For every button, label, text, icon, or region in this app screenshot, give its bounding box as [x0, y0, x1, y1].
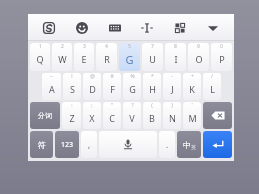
button[interactable]: Sogou input: [37, 15, 61, 40]
staticText: X: [89, 112, 95, 124]
staticText: V: [129, 112, 135, 124]
staticText: E: [81, 53, 87, 65]
button[interactable]: ': [183, 102, 201, 129]
staticText: ~: [50, 73, 53, 80]
staticText: 9: [197, 43, 200, 50]
staticText: 3: [83, 43, 86, 50]
button[interactable]: +: [183, 73, 201, 100]
button[interactable]: !: [63, 73, 81, 100]
button[interactable]: /: [203, 73, 221, 100]
button[interactable]: Backspace: [203, 102, 232, 129]
staticText: Z: [69, 112, 75, 124]
staticText: R: [104, 53, 110, 65]
staticText: -: [171, 73, 173, 80]
staticText: H: [149, 83, 156, 95]
staticText: 0: [220, 43, 223, 50]
staticText: O: [195, 53, 203, 65]
staticText: (: [151, 102, 153, 109]
button[interactable]: Enter: [203, 131, 232, 158]
button[interactable]: Hide keyboard: [201, 15, 225, 40]
staticText: @: [90, 73, 95, 80]
button[interactable]: 7: [142, 43, 163, 71]
button[interactable]: “: [103, 102, 121, 129]
button[interactable]: (: [143, 102, 161, 129]
button[interactable]: Move cursor: [135, 15, 159, 40]
staticText: C: [109, 112, 115, 124]
staticText: !: [71, 73, 73, 80]
staticText: G: [125, 52, 134, 67]
button[interactable]: 9: [188, 43, 209, 71]
staticText: A: [49, 83, 55, 95]
staticText: J: [171, 83, 174, 95]
staticText: +: [191, 73, 194, 80]
staticText: 8: [174, 43, 177, 50]
button[interactable]: :: [62, 102, 81, 129]
staticText: 123: [61, 140, 74, 150]
staticText: 英: [191, 144, 196, 150]
staticText: *: [151, 73, 154, 80]
staticText: Q: [36, 53, 44, 65]
button[interactable]: 0: [211, 43, 232, 71]
staticText: G: [129, 83, 136, 95]
staticText: ,: [88, 139, 91, 150]
button[interactable]: 中: [177, 131, 201, 158]
button[interactable]: #: [103, 73, 121, 100]
button[interactable]: -: [163, 73, 181, 100]
staticText: ;: [91, 102, 93, 109]
button[interactable]: 4: [96, 43, 117, 71]
button[interactable]: ): [163, 102, 181, 129]
button[interactable]: 符: [30, 131, 53, 158]
staticText: 分词: [38, 111, 52, 120]
staticText: D: [89, 83, 96, 95]
staticText: F: [110, 83, 115, 95]
staticText: B: [149, 112, 155, 124]
button[interactable]: More settings: [168, 15, 192, 40]
staticText: L: [210, 83, 215, 95]
button[interactable]: 2: [52, 43, 72, 71]
button[interactable]: ,: [81, 131, 97, 158]
button[interactable]: ;: [83, 102, 101, 129]
button[interactable]: *: [143, 73, 161, 100]
button[interactable]: 3: [74, 43, 94, 71]
button[interactable]: Emoji: [70, 15, 94, 40]
staticText: “: [111, 102, 113, 109]
staticText: 1: [39, 43, 42, 50]
staticText: .: [166, 139, 169, 150]
staticText: 7: [151, 43, 154, 50]
button[interactable]: %: [123, 73, 141, 100]
staticText: :: [71, 102, 73, 109]
staticText: %: [130, 73, 135, 80]
button[interactable]: 123: [55, 131, 79, 158]
staticText: ): [171, 102, 173, 109]
staticText: 5: [128, 43, 131, 50]
staticText: S: [70, 83, 75, 95]
staticText: #: [110, 73, 114, 80]
button[interactable]: 5: [119, 43, 140, 71]
staticText: K: [189, 83, 195, 95]
button[interactable]: ?: [123, 102, 141, 129]
staticText: N: [169, 112, 176, 124]
button[interactable]: Keyboard layout: [103, 15, 127, 40]
staticText: ': [191, 102, 193, 109]
button[interactable]: @: [83, 73, 101, 100]
button[interactable]: 分词: [30, 102, 60, 129]
staticText: /: [211, 73, 213, 80]
staticText: ?: [131, 102, 134, 109]
staticText: 符: [38, 140, 46, 150]
staticText: 2: [61, 43, 64, 50]
button[interactable]: ~: [42, 73, 61, 100]
button[interactable]: Space, voice input: [99, 131, 157, 158]
staticText: I: [174, 53, 178, 65]
staticText: W: [58, 53, 67, 65]
button[interactable]: .: [159, 131, 175, 158]
staticText: M: [188, 112, 197, 124]
staticText: 4: [105, 43, 108, 50]
button[interactable]: 8: [165, 43, 186, 71]
staticText: 中: [183, 140, 191, 150]
button[interactable]: 1: [30, 43, 50, 71]
staticText: U: [149, 53, 156, 65]
staticText: P: [219, 53, 225, 65]
